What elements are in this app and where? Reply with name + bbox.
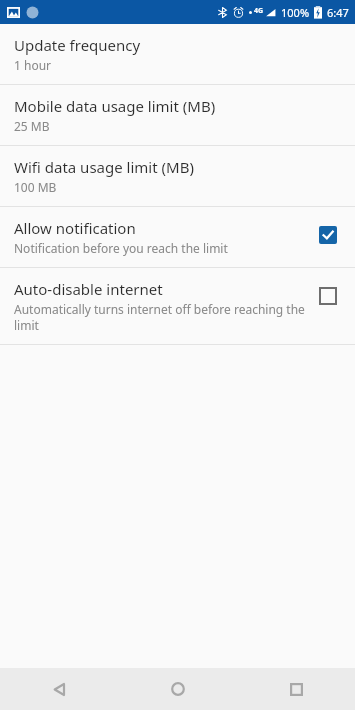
staticText: 1 hour (14, 57, 52, 73)
staticText: Allow notification (14, 218, 136, 238)
button[interactable]: Back (0, 668, 119, 710)
staticText: 6:47 (327, 5, 349, 20)
button[interactable]: Auto-disable internet (0, 268, 355, 344)
staticText: Automatically turns internet off before … (14, 301, 305, 333)
staticText: Auto-disable internet (14, 279, 163, 299)
button[interactable]: Checked (315, 222, 341, 248)
button[interactable]: Allow notification (0, 207, 355, 267)
button[interactable]: Unchecked (315, 283, 341, 309)
staticText: Wifi data usage limit (MB) (14, 157, 194, 177)
staticText: 100% (281, 5, 310, 20)
staticText: 100 MB (14, 179, 57, 195)
button[interactable]: Recent apps (237, 668, 355, 710)
staticText: Notification before you reach the limit (14, 240, 228, 256)
button[interactable]: Wifi data usage limit (MB) (0, 146, 355, 206)
staticText: Update frequency (14, 35, 141, 55)
staticText: Mobile data usage limit (MB) (14, 96, 216, 116)
staticText: 25 MB (14, 118, 50, 134)
button[interactable]: Mobile data usage limit (MB) (0, 85, 355, 145)
staticText: 4G (254, 6, 264, 16)
button[interactable]: Home (119, 668, 237, 710)
button[interactable]: Update frequency (0, 24, 355, 84)
